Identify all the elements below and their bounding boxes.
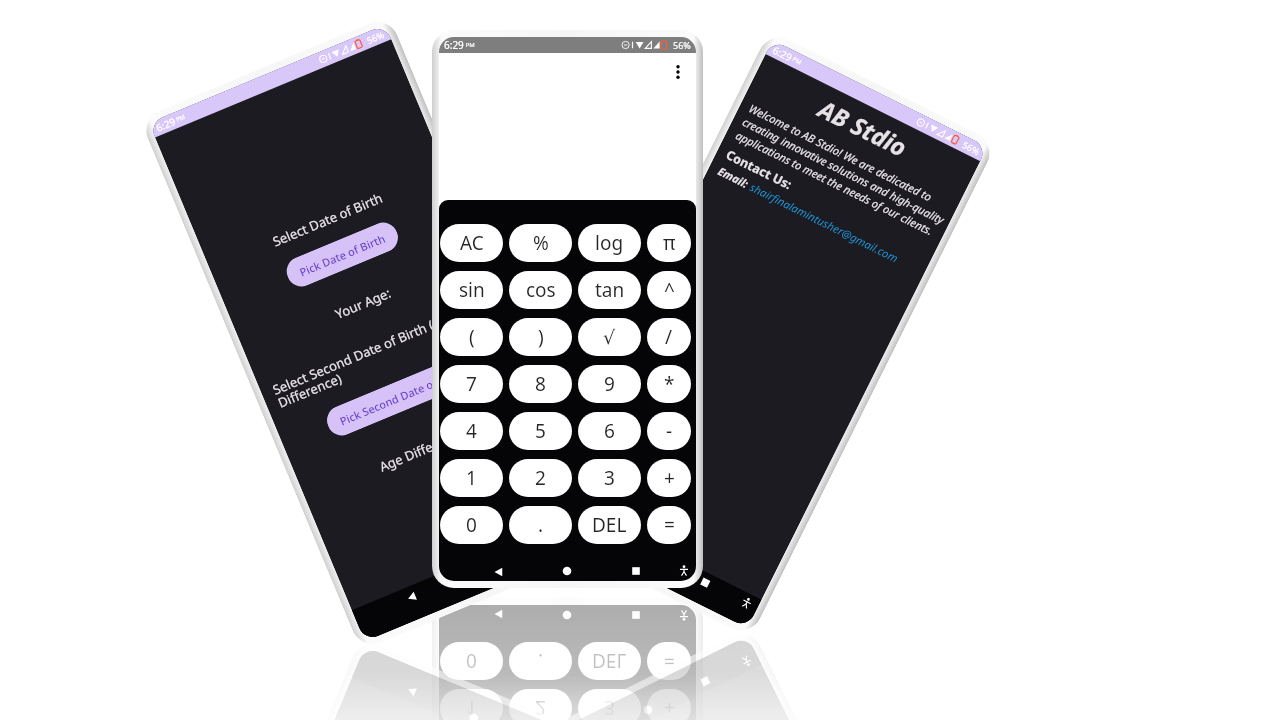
staticText: PM	[173, 113, 187, 124]
button[interactable]: sin	[440, 271, 503, 309]
button[interactable]: 2	[509, 689, 572, 720]
button[interactable]: Back	[398, 678, 426, 705]
staticText: Pick Second Date of Birth	[337, 364, 466, 429]
button[interactable]: Accessibility	[673, 605, 695, 625]
staticText: 3	[604, 465, 615, 491]
button[interactable]: .	[509, 642, 572, 680]
button[interactable]: Back	[488, 605, 510, 625]
button[interactable]: Home	[460, 557, 488, 584]
staticText: ^	[664, 277, 675, 303]
staticText: =	[664, 648, 675, 674]
button[interactable]: √	[578, 318, 641, 356]
button[interactable]: More options	[667, 61, 689, 83]
button[interactable]: %	[509, 224, 572, 262]
button[interactable]: 5	[509, 412, 572, 450]
button[interactable]: AC	[440, 224, 503, 262]
staticText: Select Second Date of Birth (For Age Dif…	[270, 293, 496, 412]
staticText: Select Date of Birth	[270, 188, 386, 250]
button[interactable]: Home	[634, 696, 662, 720]
staticText: AB Stdio	[813, 92, 913, 164]
button[interactable]: +	[647, 459, 691, 497]
staticText: 6:29	[770, 43, 794, 64]
button[interactable]: (	[440, 318, 503, 356]
button[interactable]: Home	[556, 605, 578, 625]
button[interactable]: DEL	[578, 506, 641, 544]
staticText: 1	[466, 695, 477, 720]
button[interactable]: -	[647, 412, 691, 450]
button[interactable]: +	[647, 689, 691, 720]
staticText: DEL	[592, 512, 627, 538]
button[interactable]: Accessibility	[673, 561, 695, 581]
staticText: .	[538, 512, 544, 538]
button[interactable]: Pick Date of Birth	[282, 218, 403, 291]
button[interactable]: Recent apps	[691, 569, 720, 597]
button[interactable]: π	[647, 224, 691, 262]
button[interactable]: Home	[460, 704, 488, 720]
button[interactable]: .	[509, 506, 572, 544]
button[interactable]: shairfinalamintusher@gmail.com	[748, 179, 901, 266]
staticText: 56%	[673, 39, 691, 51]
button[interactable]: Recent apps	[625, 605, 647, 625]
staticText: DEL	[592, 648, 627, 674]
button[interactable]: Pick Second Date of Birth	[322, 351, 481, 440]
button[interactable]: ^	[647, 271, 691, 309]
button[interactable]: 9	[578, 365, 641, 403]
button[interactable]: Accessibility	[732, 647, 761, 675]
staticText: Welcome to AB Stdio! We are dedicated to…	[733, 101, 959, 243]
staticText: +	[664, 695, 675, 720]
button[interactable]: log	[578, 224, 641, 262]
button[interactable]: Recent apps	[691, 667, 720, 695]
button[interactable]: =	[647, 506, 691, 544]
staticText: Pick Date of Birth	[297, 230, 388, 280]
button[interactable]: tan	[578, 271, 641, 309]
staticText: 0	[466, 512, 477, 538]
button[interactable]: Recent apps	[625, 561, 647, 581]
staticText: +	[664, 465, 675, 491]
button[interactable]: 3	[578, 689, 641, 720]
button[interactable]: 3	[578, 459, 641, 497]
button[interactable]: cos	[509, 271, 572, 309]
button[interactable]: 2	[509, 459, 572, 497]
staticText: 0	[466, 648, 477, 674]
button[interactable]: )	[509, 318, 572, 356]
staticText: Contact Us:	[723, 146, 795, 193]
staticText: AC	[460, 230, 484, 256]
staticText: 4	[466, 418, 477, 444]
staticText: Email:	[715, 163, 754, 193]
button[interactable]: Back	[488, 561, 510, 581]
button[interactable]: 0	[440, 642, 503, 680]
staticText: sin	[459, 277, 485, 303]
button[interactable]: Recent apps	[522, 531, 550, 558]
button[interactable]: DEL	[578, 642, 641, 680]
button[interactable]: =	[647, 642, 691, 680]
button[interactable]: 0	[440, 506, 503, 544]
button[interactable]: Accessibility	[567, 512, 595, 539]
button[interactable]: Home	[556, 561, 578, 581]
staticText: 7	[466, 371, 477, 397]
button[interactable]: 6	[578, 412, 641, 450]
staticText: /	[665, 324, 673, 350]
button[interactable]: /	[647, 318, 691, 356]
staticText: 56%	[365, 28, 386, 46]
button[interactable]: Accessibility	[732, 589, 761, 617]
button[interactable]: Back	[398, 583, 426, 609]
button[interactable]: 7	[440, 365, 503, 403]
button[interactable]: 1	[440, 689, 503, 720]
button[interactable]: 8	[509, 365, 572, 403]
staticText: %	[533, 230, 549, 256]
staticText: 3	[604, 695, 615, 720]
button[interactable]: 1	[440, 459, 503, 497]
staticText: Your Age:	[332, 284, 394, 323]
staticText: )	[538, 324, 544, 350]
staticText: 2	[535, 465, 546, 491]
staticText: -	[666, 418, 673, 444]
staticText: log	[595, 230, 624, 256]
button[interactable]: Back	[577, 512, 606, 540]
button[interactable]: 4	[440, 412, 503, 450]
staticText: =	[664, 512, 675, 538]
button[interactable]: Home	[634, 540, 662, 568]
staticText: √	[603, 326, 616, 348]
button[interactable]: *	[647, 365, 691, 403]
staticText: PM	[464, 41, 475, 49]
staticText: 6	[604, 418, 615, 444]
